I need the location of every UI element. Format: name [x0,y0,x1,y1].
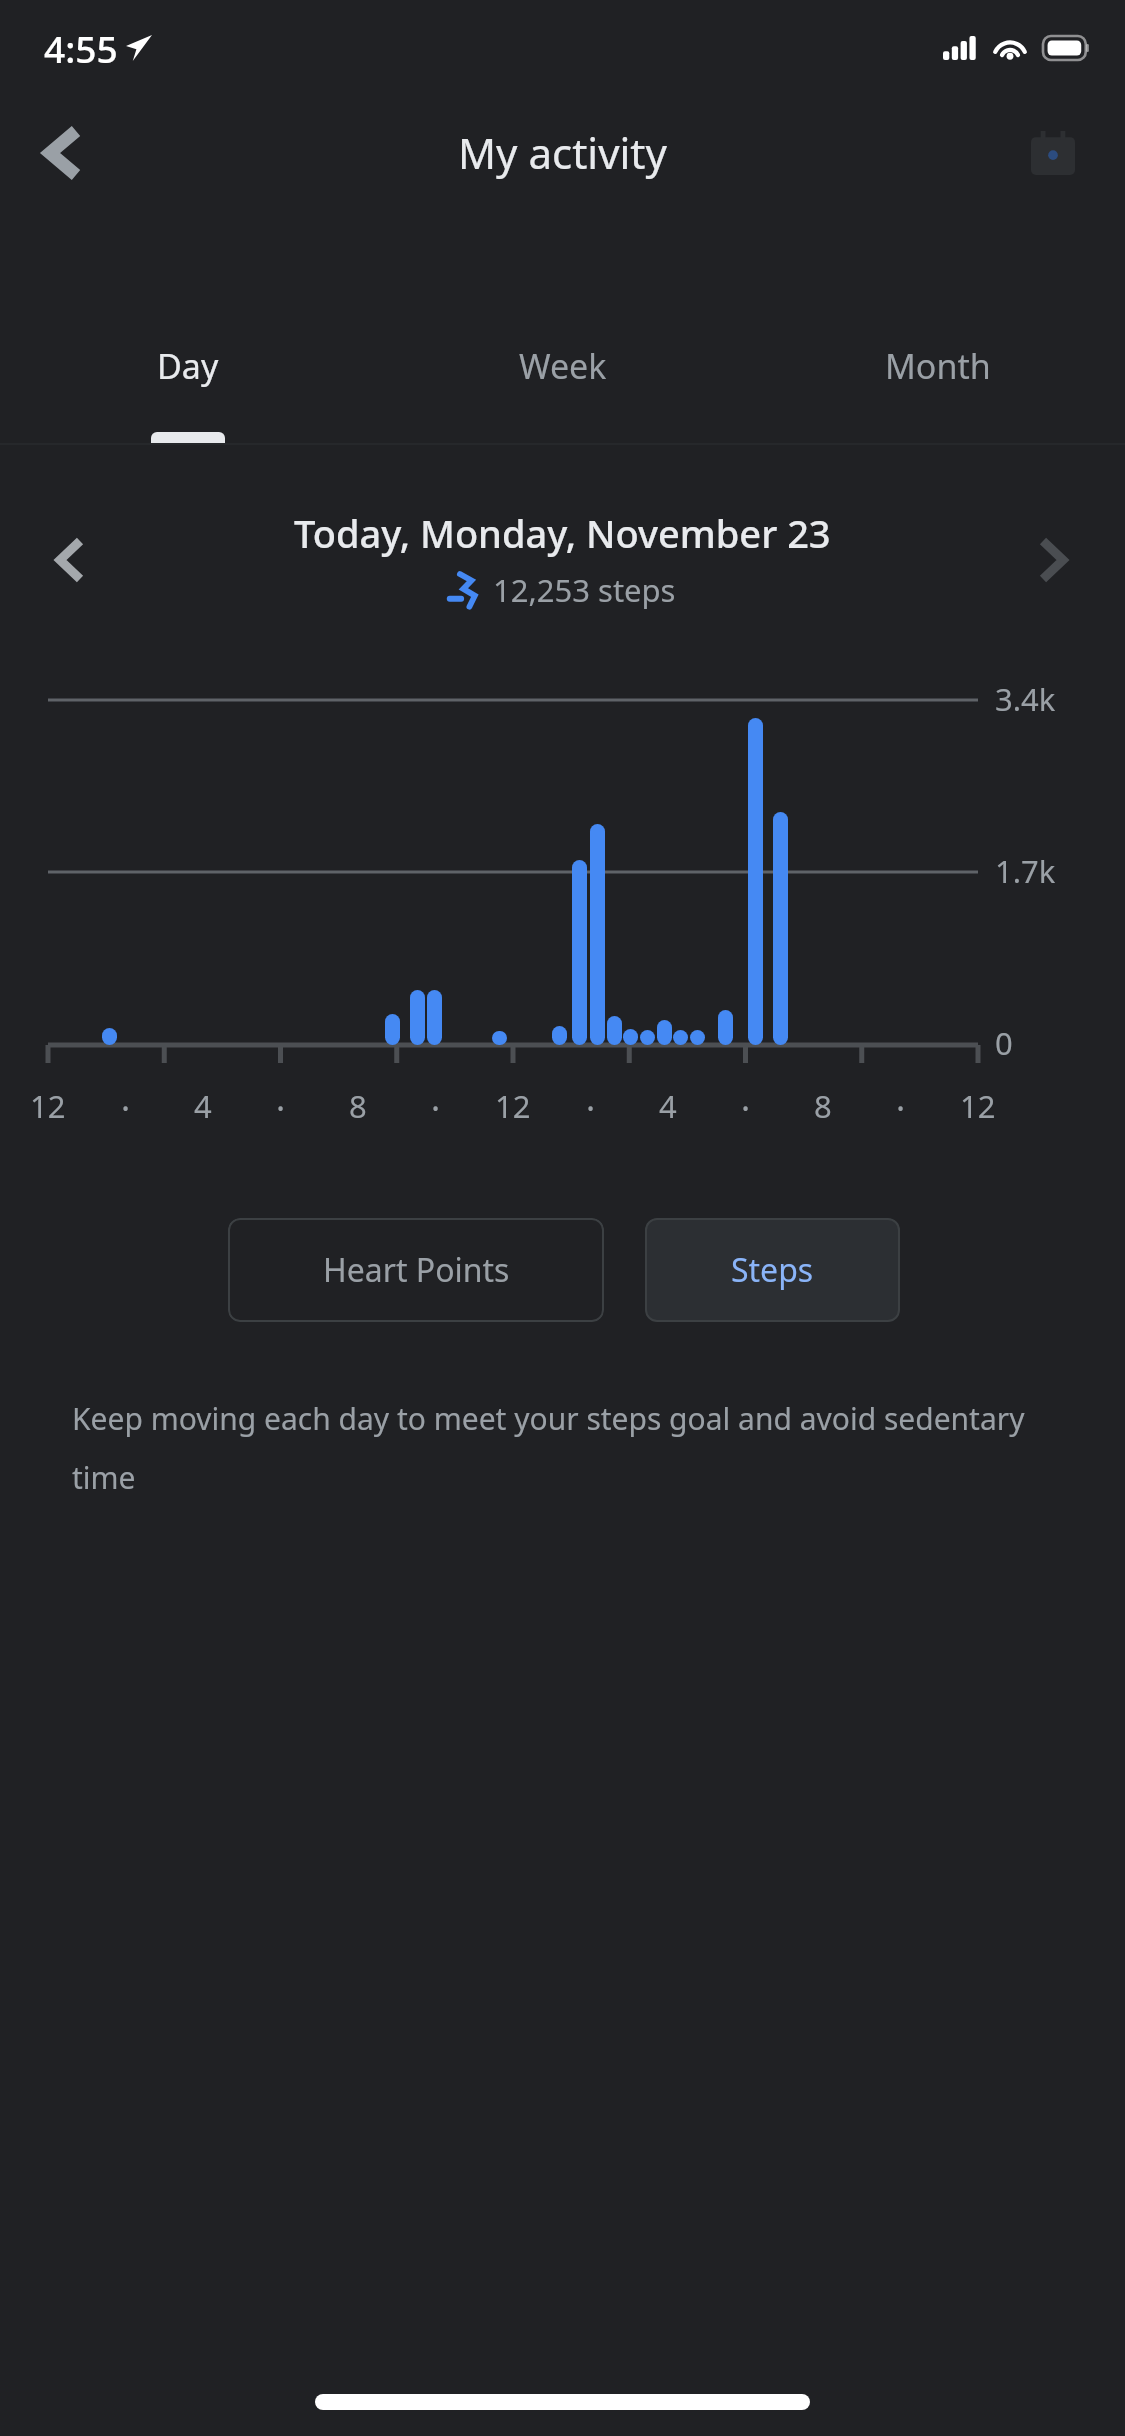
staticText: · [896,1085,906,1131]
staticText: 4:55 [44,23,118,73]
staticText: Heart Points [323,1248,510,1292]
staticText: 1.7k [995,850,1056,892]
button[interactable]: Week [375,300,750,443]
button[interactable]: Next day [1013,520,1093,600]
staticText: 8 [814,1085,832,1127]
staticText: Month [885,343,991,389]
staticText: · [586,1085,596,1131]
staticText: 8 [349,1085,367,1127]
staticText: · [276,1085,286,1131]
button[interactable]: Previous day [30,520,110,600]
button[interactable]: Steps [645,1218,900,1322]
staticText: Day [157,343,219,389]
staticText: Steps [731,1248,814,1292]
staticText: Week [519,343,607,389]
staticText: · [121,1085,131,1131]
staticText: 4 [194,1085,212,1127]
button[interactable]: Day [0,300,375,443]
button[interactable]: Month [750,300,1125,443]
staticText: 0 [995,1022,1013,1064]
staticText: 12,253 steps [493,569,676,611]
button[interactable]: Back [18,108,108,198]
staticText: 12 [495,1085,531,1127]
button[interactable]: Heart Points [228,1218,604,1322]
staticText: 12 [960,1085,996,1127]
staticText: Keep moving each day to meet your steps … [72,1398,1052,1498]
staticText: · [741,1085,751,1131]
staticText: 12 [30,1085,66,1127]
staticText: 4 [659,1085,677,1127]
staticText: · [431,1085,441,1131]
button[interactable]: Calendar [1011,111,1095,195]
staticText: Today, Monday, November 23 [294,507,831,559]
staticText: My activity [458,124,667,181]
staticText: 3.4k [995,678,1056,720]
